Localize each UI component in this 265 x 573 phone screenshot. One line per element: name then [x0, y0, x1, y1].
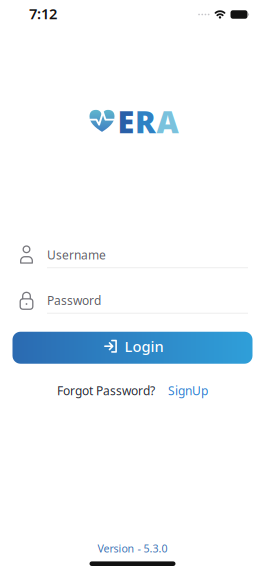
button[interactable]: SignUp	[168, 383, 208, 399]
staticText: Version - 5.3.0	[97, 541, 167, 555]
staticText: Login	[124, 336, 163, 356]
staticText: R	[135, 101, 156, 142]
staticText: SignUp	[168, 383, 208, 399]
button[interactable]: Username	[0, 246, 265, 268]
button[interactable]: Login	[12, 332, 252, 364]
staticText: 7:12	[29, 4, 57, 23]
button[interactable]: Password	[0, 291, 265, 314]
staticText: A	[156, 101, 178, 142]
button[interactable]: Forgot Password?	[57, 383, 155, 399]
staticText: Password	[47, 292, 101, 308]
staticText: Forgot Password?	[57, 383, 155, 399]
staticText: E	[117, 101, 134, 142]
staticText: Username	[47, 247, 106, 263]
